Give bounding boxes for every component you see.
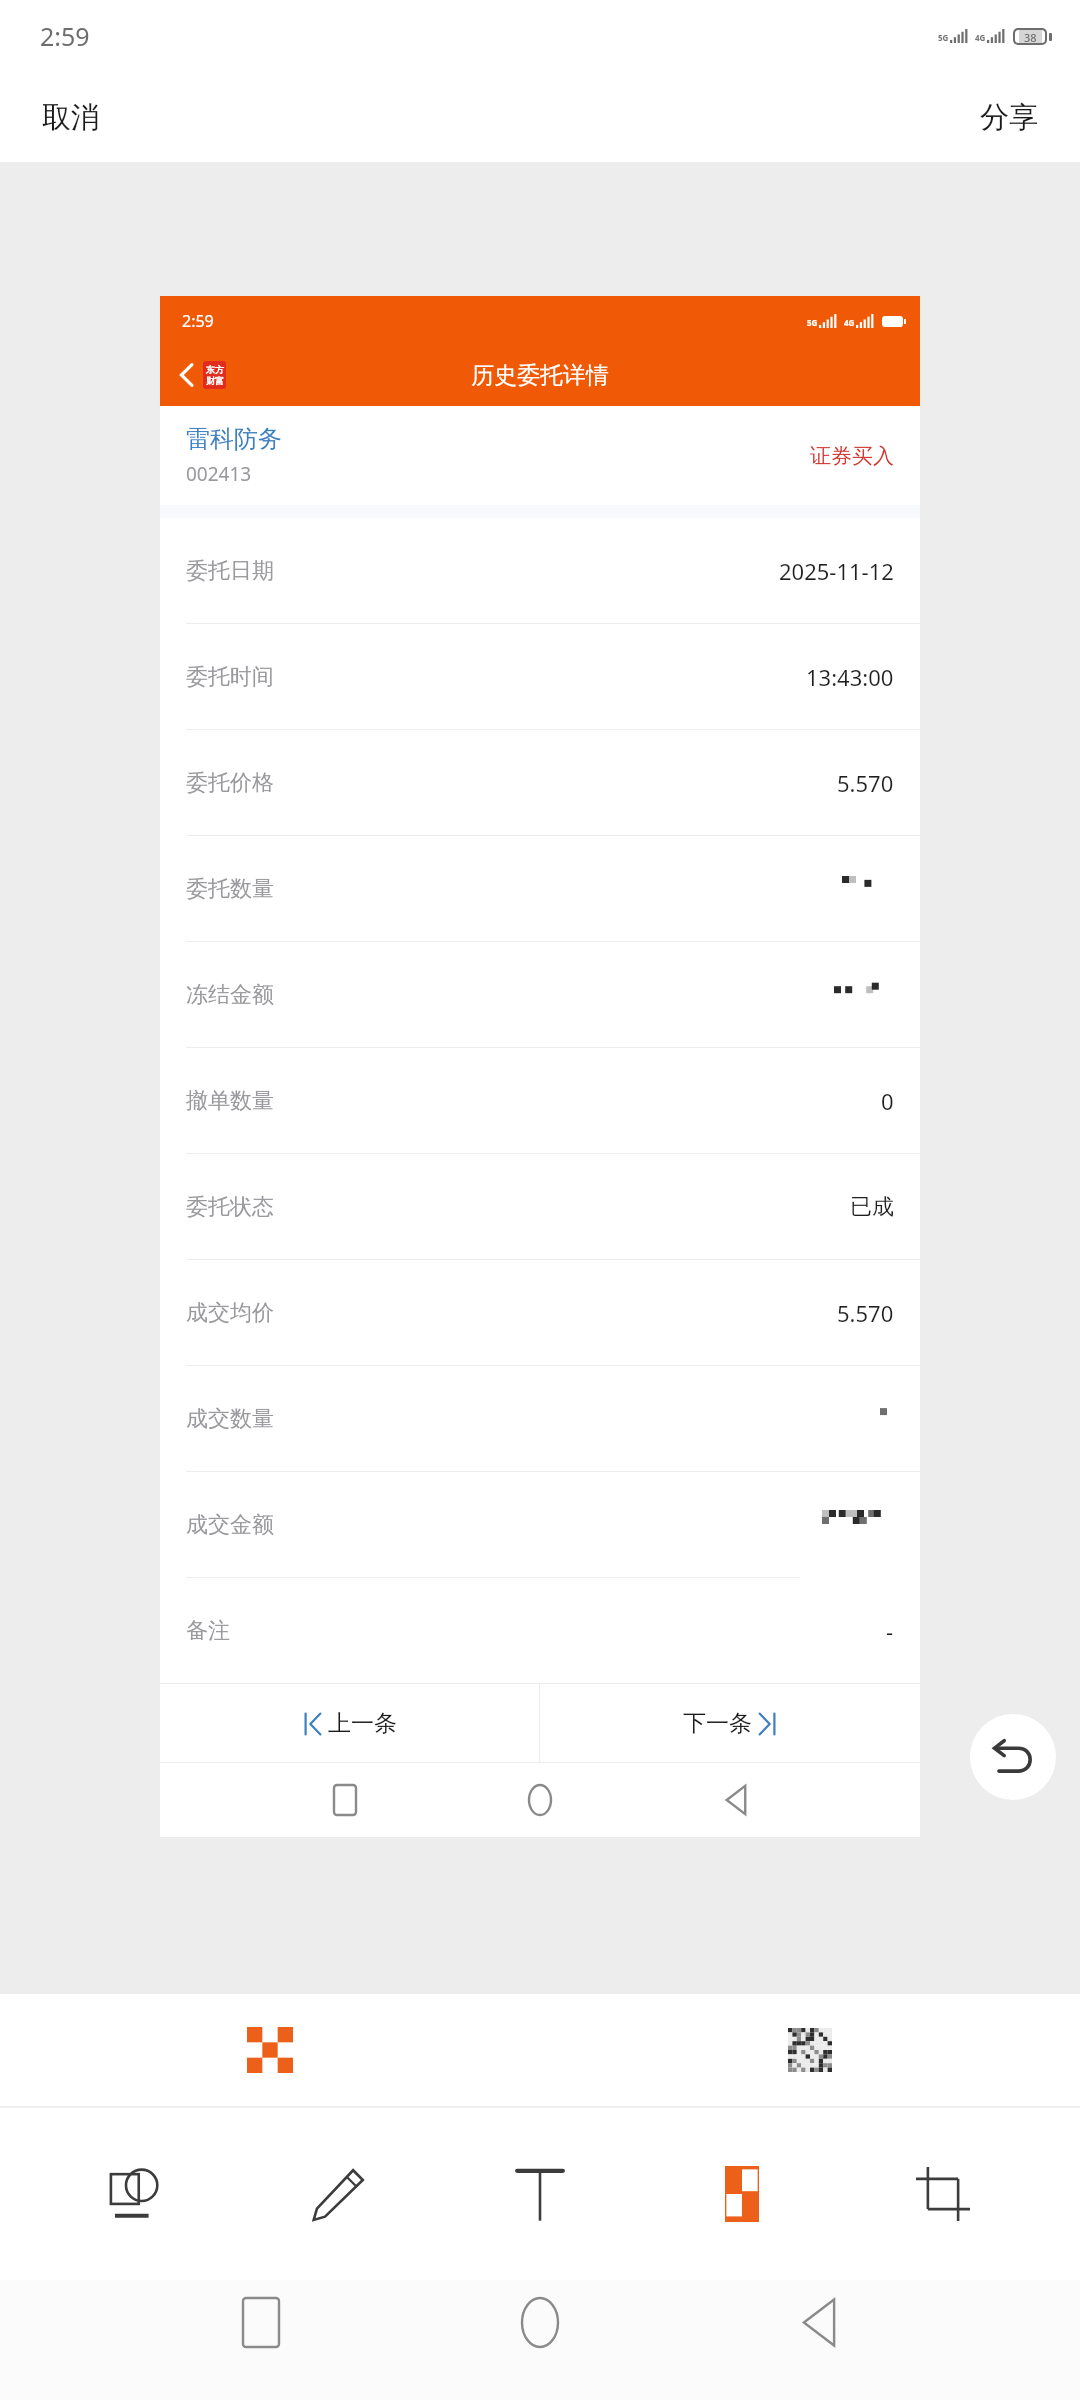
staticText: 冻结金额: [186, 981, 274, 1009]
staticText: 委托价格: [186, 769, 274, 797]
staticText: 002413: [186, 461, 252, 487]
button[interactable]: 画笔: [273, 2129, 403, 2259]
staticText: 分享: [980, 99, 1038, 136]
staticText: 备注: [186, 1617, 230, 1645]
staticText: -: [886, 1616, 894, 1646]
staticText: 委托状态: [186, 1193, 274, 1221]
staticText: 38: [1024, 30, 1037, 43]
button[interactable]: 分享: [972, 91, 1046, 144]
staticText: 委托日期: [186, 557, 274, 585]
button[interactable]: 委托价格: [160, 730, 920, 835]
staticText: 5G: [938, 32, 949, 43]
button[interactable]: 成交数量: [160, 1366, 920, 1471]
staticText: 13:43:00: [806, 662, 894, 692]
button[interactable]: 文字: [475, 2129, 605, 2259]
button[interactable]: 上一条: [160, 1684, 539, 1762]
staticText: 财富: [206, 375, 224, 386]
button[interactable]: 形状: [72, 2129, 202, 2259]
button[interactable]: 裁剪: [878, 2129, 1008, 2259]
staticText: 成交金额: [186, 1511, 274, 1539]
staticText: 历史委托详情: [471, 361, 609, 390]
button[interactable]: 备注: [160, 1578, 920, 1683]
button[interactable]: 取消: [34, 91, 108, 144]
staticText: 0: [881, 1086, 894, 1116]
staticText: 5G: [807, 317, 818, 328]
staticText: 下一条: [683, 1709, 752, 1738]
button[interactable]: 马赛克: [677, 2129, 807, 2259]
staticText: 东方: [206, 364, 224, 375]
button[interactable]: 冻结金额: [160, 942, 920, 1047]
button[interactable]: 模糊: [752, 1994, 868, 2106]
staticText: 取消: [42, 99, 100, 136]
staticText: 5.570: [837, 1298, 894, 1328]
staticText: 5.570: [837, 768, 894, 798]
button[interactable]: 委托数量: [160, 836, 920, 941]
button[interactable]: 成交金额: [160, 1472, 920, 1577]
staticText: 4G: [844, 317, 855, 328]
staticText: 雷科防务: [186, 424, 282, 454]
staticText: 成交均价: [186, 1299, 274, 1327]
staticText: 2025-11-12: [779, 556, 894, 586]
staticText: 委托时间: [186, 663, 274, 691]
staticText: 4G: [975, 32, 986, 43]
staticText: 2:59: [40, 19, 90, 53]
staticText: 证券买入: [810, 443, 894, 469]
button[interactable]: 返回: [174, 357, 230, 393]
staticText: 成交数量: [186, 1405, 274, 1433]
staticText: 委托数量: [186, 875, 274, 903]
button[interactable]: 委托日期: [160, 518, 920, 623]
staticText: 2:59: [182, 310, 214, 332]
button[interactable]: 撤销: [970, 1714, 1056, 1800]
button[interactable]: 撤单数量: [160, 1048, 920, 1153]
button[interactable]: 委托状态: [160, 1154, 920, 1259]
button[interactable]: 成交均价: [160, 1260, 920, 1365]
staticText: 上一条: [328, 1709, 397, 1738]
staticText: 已成: [850, 1193, 894, 1221]
button[interactable]: 委托时间: [160, 624, 920, 729]
button[interactable]: 下一条: [540, 1684, 920, 1762]
button[interactable]: 马赛克: [212, 1994, 328, 2106]
staticText: 撤单数量: [186, 1087, 274, 1115]
